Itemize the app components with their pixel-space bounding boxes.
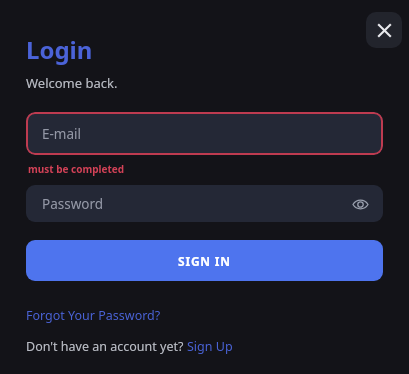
staticText: E-mail <box>42 125 82 143</box>
staticText: Forgot Your Password? <box>26 307 161 324</box>
button[interactable]: Forgot Your Password? <box>26 307 161 324</box>
staticText: must be completed <box>28 162 125 176</box>
staticText: Don't have an account yet? <box>26 338 187 355</box>
button[interactable]: Show password <box>345 189 375 219</box>
button[interactable]: SIGN IN <box>26 240 383 281</box>
staticText: SIGN IN <box>178 253 231 269</box>
staticText: Sign Up <box>187 338 233 355</box>
button[interactable]: Close <box>366 12 402 48</box>
staticText: Password <box>42 195 104 213</box>
staticText: Welcome back. <box>26 74 118 92</box>
button[interactable]: Sign Up <box>187 338 233 355</box>
staticText: Login <box>26 33 93 66</box>
button[interactable]: Password <box>26 185 383 222</box>
button[interactable]: E-mail <box>26 112 383 155</box>
